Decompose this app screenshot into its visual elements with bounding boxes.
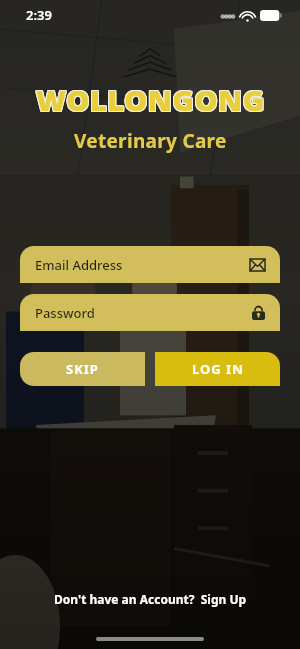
button[interactable]: LOG IN bbox=[155, 352, 280, 386]
staticText: WOLLONGONG bbox=[35, 80, 264, 119]
button[interactable]: Password bbox=[20, 294, 280, 331]
button[interactable]: SKIP bbox=[20, 352, 145, 386]
staticText: WOLLONGONG bbox=[35, 81, 264, 120]
staticText: Email Address bbox=[35, 256, 123, 274]
staticText: 2:39 bbox=[26, 6, 52, 24]
staticText: LOG IN bbox=[192, 360, 244, 378]
button[interactable]: Email Address bbox=[20, 246, 280, 283]
staticText: Veterinary Care bbox=[74, 128, 227, 154]
button[interactable]: Don't have an Account? Sign Up bbox=[54, 591, 247, 607]
staticText: WOLLONGONG bbox=[37, 79, 266, 118]
staticText: WOLLONGONG bbox=[37, 81, 266, 120]
staticText: WOLLONGONG bbox=[36, 80, 265, 119]
staticText: WOLLONGONG bbox=[37, 80, 266, 119]
staticText: Password bbox=[35, 304, 95, 322]
staticText: WOLLONGONG bbox=[36, 81, 265, 120]
other: Password bbox=[252, 305, 265, 320]
staticText: SKIP bbox=[66, 360, 99, 378]
other: Email Address bbox=[250, 259, 265, 271]
staticText: WOLLONGONG bbox=[35, 79, 264, 118]
staticText: WOLLONGONG bbox=[36, 79, 265, 118]
